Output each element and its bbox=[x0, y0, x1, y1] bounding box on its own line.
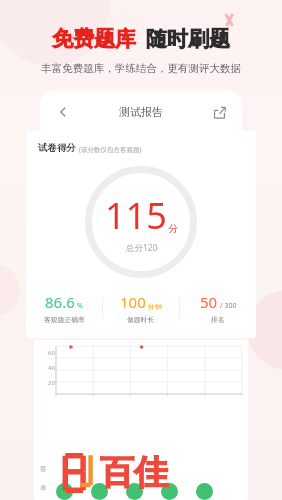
staticText: 随时刷题 bbox=[146, 26, 230, 52]
staticText: 50 bbox=[200, 292, 218, 312]
staticText: 总分120 bbox=[126, 242, 158, 254]
button[interactable]: 100 bbox=[103, 292, 179, 324]
staticText: % bbox=[77, 301, 83, 311]
staticText: 丰富免费题库，学练结合，更有测评大数据 bbox=[0, 62, 282, 75]
staticText: 做题时长 bbox=[127, 315, 155, 324]
staticText: 客观题正确率 bbox=[44, 315, 85, 324]
staticText: 分 bbox=[168, 222, 178, 235]
staticText: 排名 bbox=[211, 315, 225, 324]
staticText: (该分数仅包含客观题) bbox=[79, 145, 142, 154]
button[interactable]: 50 bbox=[180, 292, 256, 324]
staticText: 分钟 bbox=[148, 302, 162, 311]
staticText: 百佳 bbox=[100, 451, 168, 494]
staticText: 60 bbox=[48, 349, 55, 357]
staticText: 40 bbox=[48, 364, 55, 372]
button[interactable]: Share bbox=[208, 101, 230, 123]
staticText: 答 bbox=[40, 465, 47, 473]
staticText: 115 bbox=[105, 191, 167, 240]
staticText: 测试报告 bbox=[119, 105, 163, 119]
button[interactable]: Back bbox=[52, 101, 74, 123]
staticText: 100 bbox=[120, 292, 146, 312]
staticText: 免费题库 bbox=[52, 26, 136, 52]
staticText: 单 bbox=[40, 484, 47, 492]
staticText: 试卷得分 bbox=[38, 142, 76, 154]
staticText: 20 bbox=[48, 379, 55, 387]
staticText: / 300 bbox=[220, 301, 237, 311]
staticText: 86.6 bbox=[45, 292, 75, 312]
button[interactable]: 86.6 bbox=[26, 292, 102, 324]
